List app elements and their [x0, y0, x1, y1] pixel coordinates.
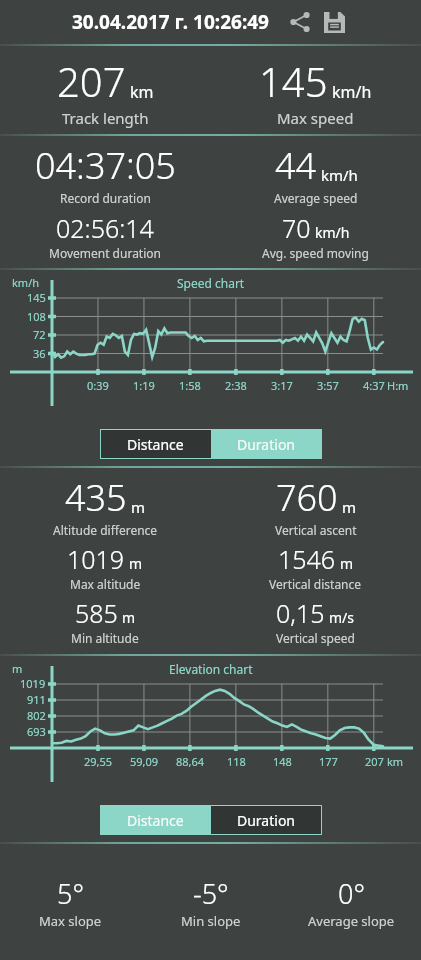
staticText: 108	[27, 309, 46, 324]
button[interactable]: Save	[319, 7, 349, 37]
staticText: 177	[319, 754, 338, 769]
staticText: 4:37	[363, 378, 385, 393]
staticText: 207	[57, 54, 126, 108]
staticText: 585	[75, 596, 118, 630]
staticText: km/h	[332, 81, 372, 103]
staticText: 693	[27, 724, 46, 739]
button[interactable]: Distance	[100, 805, 211, 835]
staticText: m	[122, 608, 136, 627]
staticText: 88,64	[176, 754, 205, 769]
staticText: 145	[259, 54, 328, 108]
staticText: Duration	[237, 435, 296, 454]
staticText: 72	[33, 327, 46, 342]
staticText: 760	[276, 473, 338, 522]
staticText: 1:58	[179, 378, 201, 393]
staticText: Min slope	[181, 912, 241, 930]
staticText: Speed chart	[177, 275, 245, 291]
staticText: 1019	[67, 542, 125, 576]
staticText: Record duration	[60, 190, 151, 206]
staticText: 3:17	[271, 378, 293, 393]
staticText: 145	[27, 290, 46, 305]
staticText: 3:57	[317, 378, 339, 393]
staticText: 1019	[20, 676, 46, 691]
staticText: m	[342, 497, 357, 517]
staticText: Duration	[237, 811, 296, 830]
staticText: 70	[282, 211, 311, 245]
staticText: 36	[33, 346, 46, 361]
staticText: Max altitude	[70, 576, 141, 592]
staticText: Avg. speed moving	[262, 245, 369, 261]
staticText: 02:56:14	[56, 211, 154, 245]
staticText: 2:38	[225, 378, 247, 393]
staticText: km/h	[321, 165, 358, 185]
staticText: km	[387, 754, 404, 769]
staticText: 435	[65, 473, 127, 522]
staticText: 911	[27, 692, 46, 707]
staticText: 29,55	[84, 754, 113, 769]
staticText: 802	[27, 708, 46, 723]
staticText: km/h	[12, 275, 40, 290]
staticText: 04:37:05	[35, 141, 176, 190]
staticText: Vertical ascent	[275, 522, 357, 538]
staticText: Altitude difference	[53, 522, 158, 538]
staticText: 0,15	[276, 596, 325, 630]
staticText: Track length	[62, 108, 149, 128]
staticText: Distance	[127, 435, 184, 454]
staticText: Elevation chart	[169, 661, 253, 677]
staticText: -5°	[193, 875, 229, 912]
staticText: 30.04.2017 г. 10:26:49	[72, 9, 269, 35]
staticText: m	[12, 661, 23, 676]
staticText: km/h	[315, 223, 350, 242]
button[interactable]: Duration	[211, 429, 322, 459]
staticText: Vertical speed	[276, 630, 355, 646]
staticText: m	[129, 554, 143, 573]
staticText: 148	[273, 754, 292, 769]
staticText: 0°	[338, 875, 365, 912]
staticText: 1546	[278, 542, 336, 576]
staticText: m	[340, 554, 354, 573]
staticText: km	[130, 81, 154, 103]
staticText: Average speed	[274, 190, 358, 206]
staticText: 0:39	[87, 378, 109, 393]
staticText: 5°	[57, 875, 84, 912]
staticText: m/s	[329, 608, 355, 627]
staticText: 118	[227, 754, 246, 769]
staticText: Average slope	[308, 912, 395, 930]
staticText: m	[131, 497, 146, 517]
button[interactable]: Duration	[211, 805, 322, 835]
button[interactable]: Share	[285, 7, 315, 37]
staticText: H:m	[387, 378, 409, 393]
staticText: Movement duration	[49, 245, 161, 261]
staticText: 1:19	[133, 378, 155, 393]
staticText: Distance	[127, 811, 184, 830]
staticText: Vertical distance	[269, 576, 362, 592]
staticText: 59,09	[130, 754, 159, 769]
staticText: Max speed	[277, 108, 354, 128]
button[interactable]: Distance	[100, 429, 211, 459]
staticText: 207	[365, 754, 384, 769]
staticText: Max slope	[39, 912, 102, 930]
staticText: 44	[275, 141, 317, 190]
staticText: Min altitude	[71, 630, 139, 646]
